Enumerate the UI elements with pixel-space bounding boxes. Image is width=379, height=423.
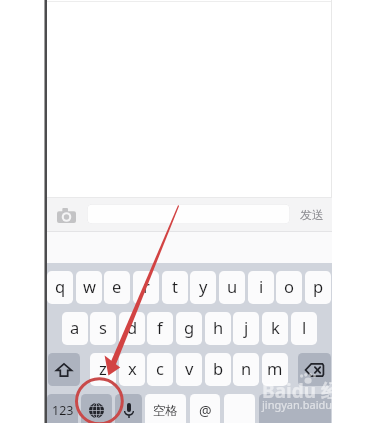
- staticText: k: [271, 316, 280, 338]
- button[interactable]: t: [162, 271, 188, 304]
- staticText: p: [313, 275, 324, 297]
- button[interactable]: Return: [259, 394, 331, 423]
- staticText: a: [70, 316, 80, 338]
- staticText: e: [112, 275, 122, 297]
- staticText: c: [156, 357, 164, 379]
- button[interactable]: y: [190, 271, 216, 304]
- staticText: l: [302, 316, 307, 338]
- staticText: g: [184, 316, 195, 338]
- staticText: o: [284, 275, 294, 297]
- staticText: Baidu 经验: [262, 378, 359, 404]
- button[interactable]: g: [176, 312, 202, 345]
- button[interactable]: w: [76, 271, 102, 304]
- button[interactable]: @: [190, 394, 220, 423]
- button[interactable]: [87, 204, 290, 224]
- staticText: @: [199, 401, 212, 420]
- button[interactable]: c: [147, 353, 173, 386]
- staticText: i: [259, 275, 264, 297]
- button[interactable]: e: [104, 271, 130, 304]
- button[interactable]: o: [276, 271, 302, 304]
- staticText: u: [227, 275, 238, 297]
- staticText: b: [213, 357, 224, 379]
- staticText: x: [128, 357, 137, 379]
- staticText: r: [143, 275, 150, 297]
- button[interactable]: Shift: [48, 353, 80, 386]
- button[interactable]: u: [219, 271, 245, 304]
- staticText: w: [83, 275, 96, 297]
- button[interactable]: x: [119, 353, 145, 386]
- staticText: z: [99, 357, 107, 379]
- staticText: j: [244, 316, 249, 338]
- staticText: d: [127, 316, 138, 338]
- button[interactable]: h: [205, 312, 231, 345]
- button[interactable]: q: [47, 271, 73, 304]
- staticText: jingyan.baidu.com: [262, 397, 358, 412]
- button[interactable]: f: [147, 312, 173, 345]
- staticText: s: [99, 316, 107, 338]
- staticText: n: [241, 357, 252, 379]
- button[interactable]: Voice input: [115, 394, 142, 423]
- button[interactable]: Backspace: [298, 353, 331, 386]
- button[interactable]: i: [248, 271, 274, 304]
- staticText: t: [172, 275, 178, 297]
- button[interactable]: d: [119, 312, 145, 345]
- button[interactable]: [224, 394, 255, 423]
- button[interactable]: 空格: [145, 394, 186, 423]
- staticText: v: [185, 357, 194, 379]
- button[interactable]: a: [62, 312, 88, 345]
- staticText: q: [55, 275, 66, 297]
- button[interactable]: Switch keyboard: [81, 394, 112, 423]
- button[interactable]: r: [133, 271, 159, 304]
- button[interactable]: 123: [47, 394, 78, 423]
- staticText: 123: [52, 402, 74, 419]
- button[interactable]: k: [262, 312, 288, 345]
- button[interactable]: p: [305, 271, 331, 304]
- button[interactable]: Camera: [57, 208, 76, 223]
- staticText: 空格: [153, 403, 178, 419]
- staticText: y: [199, 275, 208, 297]
- staticText: 发送: [300, 207, 324, 222]
- staticText: f: [157, 316, 163, 338]
- button[interactable]: z: [90, 353, 116, 386]
- button[interactable]: v: [176, 353, 202, 386]
- staticText: h: [213, 316, 224, 338]
- button[interactable]: l: [291, 312, 317, 345]
- button[interactable]: m: [262, 353, 288, 386]
- button[interactable]: n: [233, 353, 259, 386]
- button[interactable]: 发送: [296, 203, 328, 226]
- button[interactable]: b: [205, 353, 231, 386]
- button[interactable]: j: [233, 312, 259, 345]
- button[interactable]: s: [90, 312, 116, 345]
- staticText: m: [267, 357, 283, 379]
